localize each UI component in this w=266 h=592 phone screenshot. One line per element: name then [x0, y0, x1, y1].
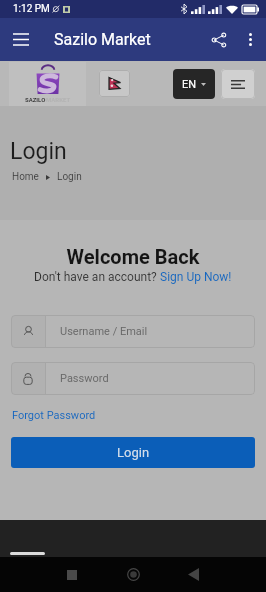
staticText: EN: [182, 78, 197, 91]
staticText: Don't have an account?: [34, 270, 160, 284]
staticText: Sazilo Market: [54, 30, 151, 49]
staticText: Forgot Password: [12, 409, 96, 422]
staticText: Sign Up Now!: [160, 270, 232, 284]
button[interactable]: EN: [173, 69, 215, 99]
button[interactable]: Login: [11, 437, 255, 468]
button[interactable]: Forgot Password: [12, 409, 96, 422]
staticText: Home: [12, 171, 39, 183]
staticText: MARKET: [46, 96, 71, 103]
button[interactable]: Username / Email: [11, 315, 255, 348]
button[interactable]: Password: [11, 362, 255, 395]
staticText: Username / Email: [60, 325, 148, 338]
button[interactable]: Sign Up Now!: [160, 270, 232, 284]
staticText: Login: [10, 138, 67, 165]
button[interactable]: Share: [202, 18, 236, 61]
button[interactable]: Open navigation drawer: [0, 18, 41, 61]
button[interactable]: Select country: [99, 70, 130, 97]
button[interactable]: Home: [113, 557, 153, 592]
staticText: Password: [60, 372, 109, 385]
button[interactable]: Menu: [221, 69, 255, 99]
button[interactable]: Sazilo Market home: [9, 62, 86, 106]
button[interactable]: Home: [12, 171, 39, 183]
button[interactable]: Back: [173, 557, 213, 592]
button[interactable]: More options: [236, 18, 264, 61]
staticText: 1:12 PM: [13, 3, 50, 15]
button[interactable]: Recent apps: [52, 557, 92, 592]
staticText: Login: [117, 445, 150, 460]
staticText: SAZILO: [25, 96, 46, 103]
staticText: Login: [57, 171, 82, 183]
staticText: Welcome Back: [0, 245, 266, 268]
